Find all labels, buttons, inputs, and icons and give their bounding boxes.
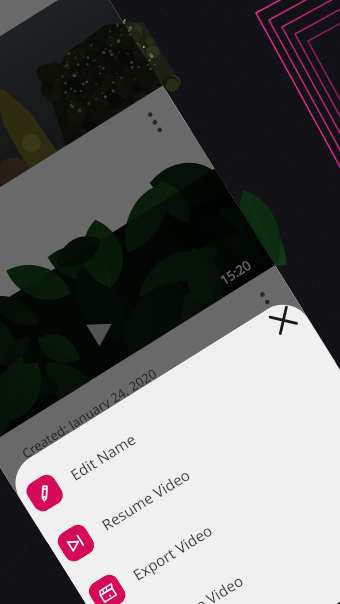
staticText: Edit Name bbox=[66, 428, 140, 485]
staticText: Created: January 24, 2020 bbox=[18, 364, 160, 462]
button[interactable]: Edit Name bbox=[8, 300, 328, 530]
button[interactable]: Close bbox=[267, 304, 300, 337]
button[interactable]: More options bbox=[242, 277, 292, 327]
button[interactable]: Delete Video bbox=[102, 450, 340, 604]
button[interactable]: More options bbox=[130, 97, 180, 147]
button[interactable]: Resume Video bbox=[40, 350, 340, 580]
staticText: Export Video bbox=[129, 520, 216, 585]
button[interactable]: Export Video bbox=[71, 400, 340, 604]
staticText: Resume Video bbox=[98, 464, 194, 535]
staticText: 15:20 bbox=[216, 256, 255, 289]
staticText: Delete Video bbox=[160, 570, 247, 604]
